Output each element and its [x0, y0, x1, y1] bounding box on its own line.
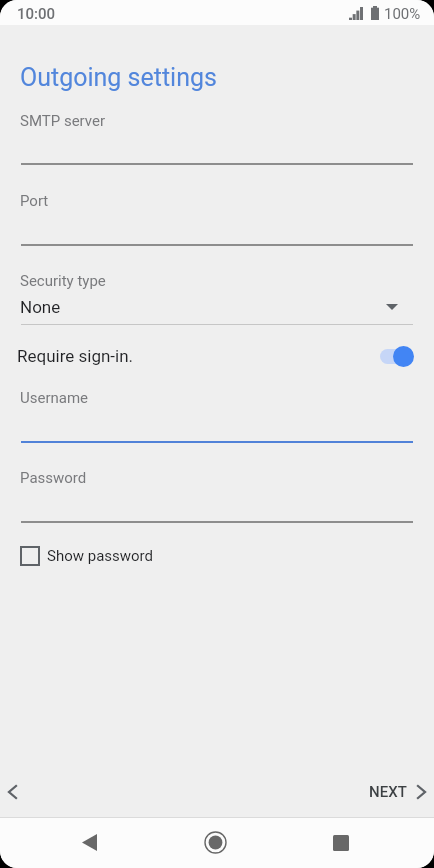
- button[interactable]: Back: [67, 820, 112, 865]
- staticText: Outgoing settings: [20, 63, 217, 92]
- staticText: Security type: [20, 272, 106, 290]
- button[interactable]: Require sign-in.: [0, 336, 434, 376]
- staticText: Password: [20, 469, 87, 487]
- button[interactable]: Recents: [318, 820, 363, 865]
- staticText: NEXT: [369, 783, 407, 801]
- staticText: Port: [20, 192, 49, 210]
- staticText: 10:00: [17, 5, 56, 23]
- staticText: SMTP server: [20, 112, 106, 130]
- staticText: None: [20, 297, 61, 317]
- button[interactable]: Back: [0, 770, 25, 814]
- button[interactable]: Select security type: [370, 292, 414, 322]
- staticText: Require sign-in.: [17, 346, 134, 366]
- staticText: Show password: [47, 547, 154, 565]
- staticText: 100%: [384, 5, 421, 23]
- button[interactable]: Show password: [0, 540, 168, 572]
- button[interactable]: Home: [193, 820, 238, 865]
- staticText: Username: [20, 389, 89, 407]
- button[interactable]: NEXT: [355, 770, 434, 814]
